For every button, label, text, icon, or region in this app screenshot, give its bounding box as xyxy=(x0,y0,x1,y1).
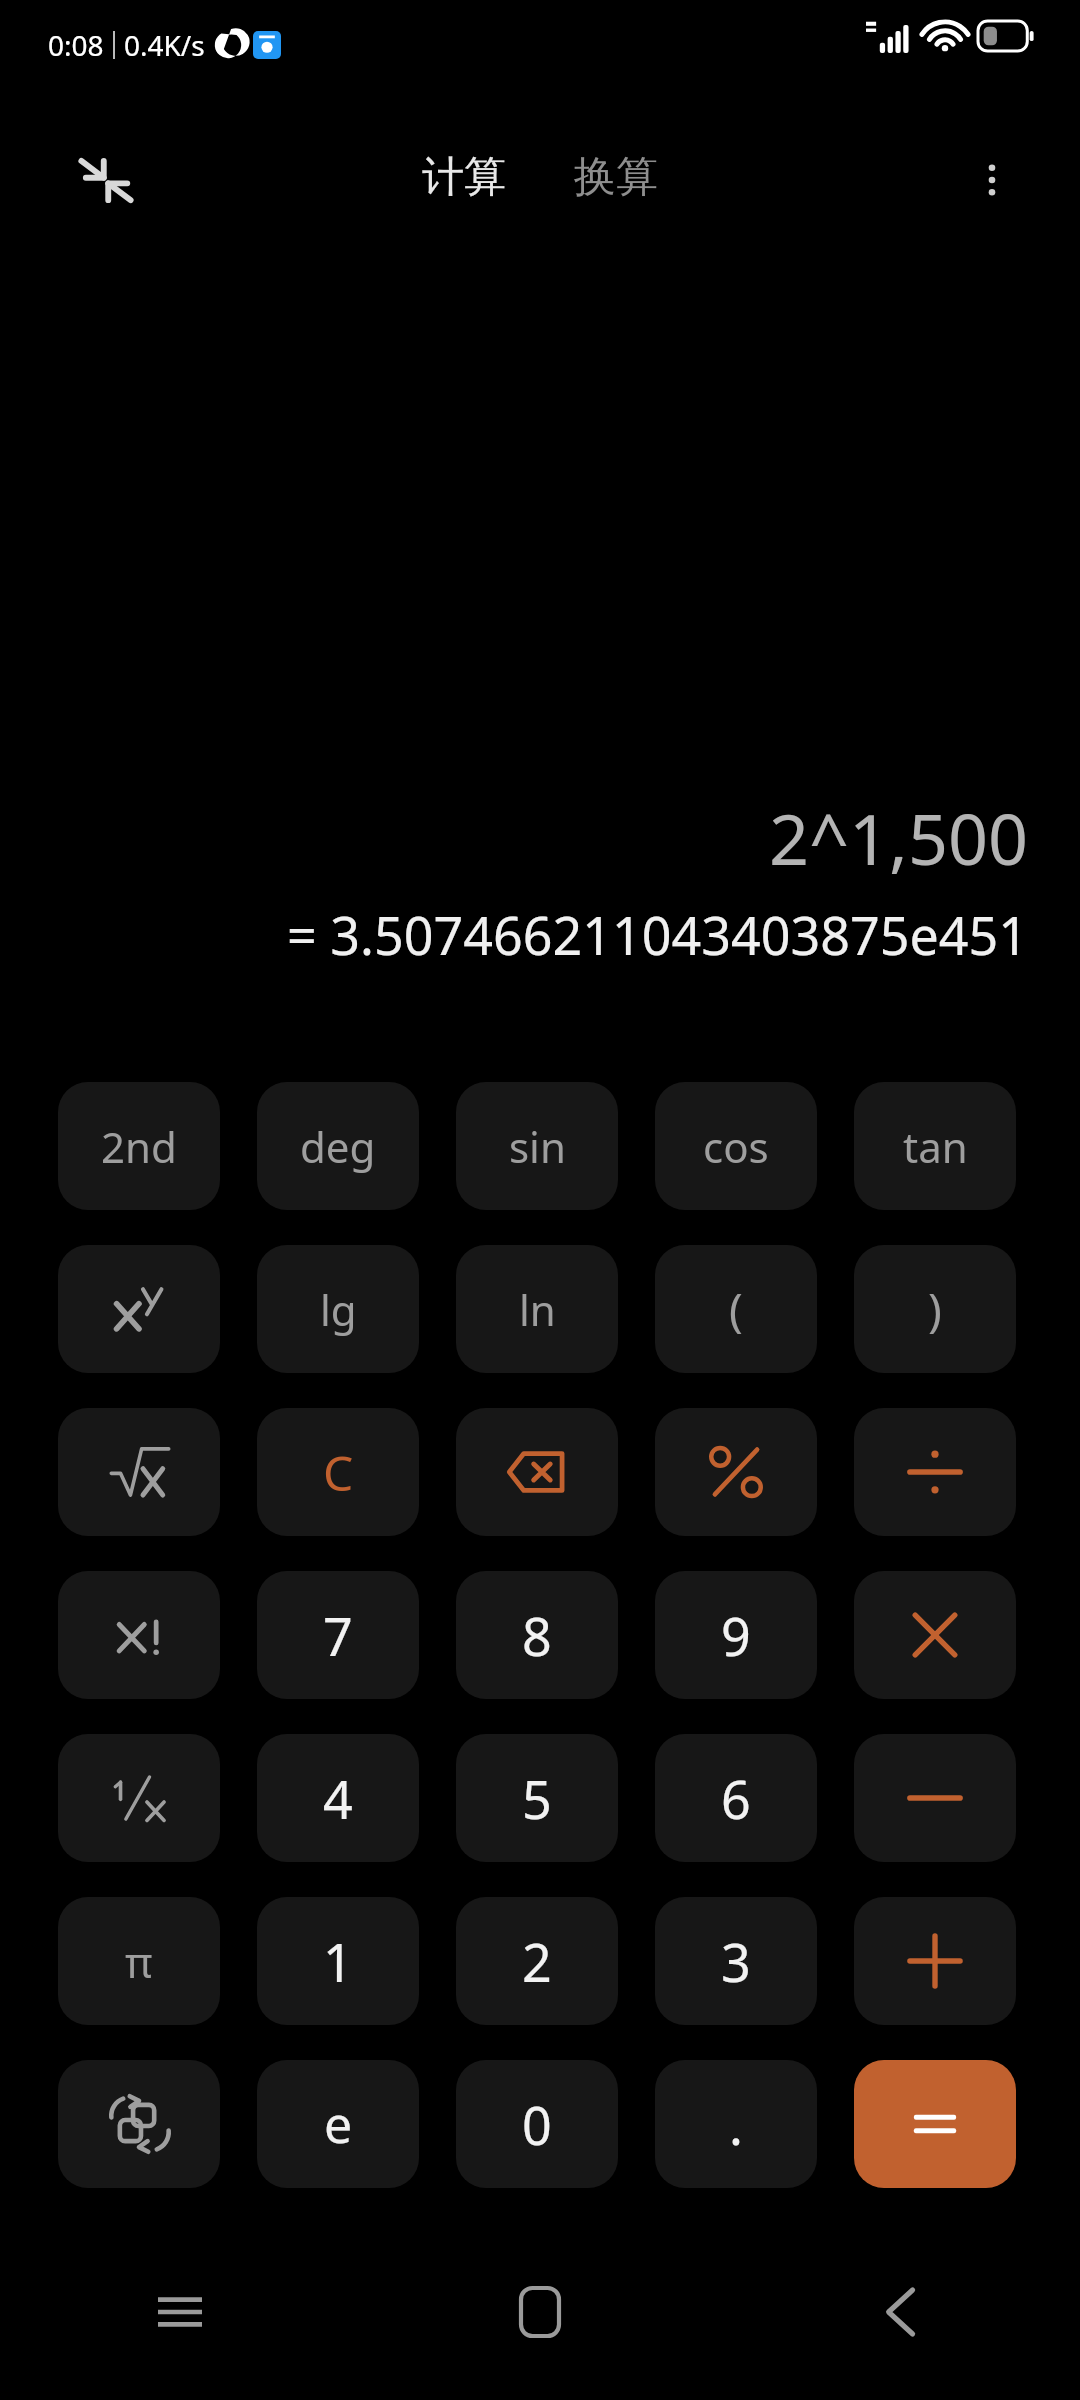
staticText: 5 xyxy=(522,1763,552,1834)
button[interactable]: 计算 xyxy=(410,143,518,212)
button[interactable]: ) xyxy=(854,1245,1016,1373)
button[interactable]: π xyxy=(58,1897,220,2025)
staticText: cos xyxy=(703,1118,769,1175)
staticText: 0.4K/s xyxy=(124,26,205,64)
button[interactable]: deg xyxy=(257,1082,419,1210)
button[interactable]: Divide xyxy=(854,1408,1016,1536)
button[interactable]: sin xyxy=(456,1082,618,1210)
button[interactable]: 6 xyxy=(655,1734,817,1862)
staticText: 计算 xyxy=(422,151,506,204)
staticText: sin xyxy=(509,1118,566,1175)
staticText: ) xyxy=(928,1278,942,1341)
staticText: C xyxy=(323,1440,354,1505)
staticText: 7 xyxy=(323,1600,353,1671)
button[interactable]: e xyxy=(257,2060,419,2188)
button[interactable]: 2 xyxy=(456,1897,618,2025)
staticText: 9 xyxy=(721,1600,751,1671)
button[interactable]: Square root xyxy=(58,1408,220,1536)
button[interactable]: Recents xyxy=(125,2257,235,2367)
button[interactable]: Backspace xyxy=(456,1408,618,1536)
button[interactable]: x to the power y xyxy=(58,1245,220,1373)
button[interactable]: tan xyxy=(854,1082,1016,1210)
button[interactable]: 换算 xyxy=(562,143,670,212)
staticText: 2nd xyxy=(101,1118,177,1175)
button[interactable]: Multiply xyxy=(854,1571,1016,1699)
staticText: 6 xyxy=(721,1763,751,1834)
button[interactable]: ( xyxy=(655,1245,817,1373)
button[interactable]: 5 xyxy=(456,1734,618,1862)
staticText: 0 xyxy=(522,2089,552,2160)
button[interactable]: Factorial xyxy=(58,1571,220,1699)
button[interactable]: 0 xyxy=(456,2060,618,2188)
staticText: 2 xyxy=(522,1926,552,1997)
button[interactable]: Plus xyxy=(854,1897,1016,2025)
button[interactable]: cos xyxy=(655,1082,817,1210)
button[interactable]: C xyxy=(257,1408,419,1536)
button[interactable]: 4 xyxy=(257,1734,419,1862)
button[interactable]: Reciprocal xyxy=(58,1734,220,1862)
button[interactable]: Home xyxy=(485,2257,595,2367)
staticText: 4 xyxy=(323,1763,353,1834)
button[interactable]: 2nd xyxy=(58,1082,220,1210)
button[interactable]: 7 xyxy=(257,1571,419,1699)
button[interactable]: . xyxy=(655,2060,817,2188)
staticText: 0:08 xyxy=(48,26,104,64)
staticText: = 3.507466211043403875e451 xyxy=(287,899,1028,970)
staticText: lg xyxy=(320,1281,357,1338)
button[interactable]: 9 xyxy=(655,1571,817,1699)
button[interactable]: More options xyxy=(948,136,1036,224)
staticText: . xyxy=(729,2089,743,2160)
staticText: deg xyxy=(300,1118,376,1175)
staticText: 3 xyxy=(721,1926,751,1997)
staticText: π xyxy=(125,1933,153,1990)
button[interactable]: Equals xyxy=(854,2060,1016,2188)
button[interactable]: ln xyxy=(456,1245,618,1373)
staticText: tan xyxy=(903,1118,968,1175)
button[interactable]: Percent xyxy=(655,1408,817,1536)
staticText: 1 xyxy=(323,1926,353,1997)
staticText: ln xyxy=(519,1281,556,1338)
button[interactable]: 3 xyxy=(655,1897,817,2025)
button[interactable]: 1 xyxy=(257,1897,419,2025)
staticText: ( xyxy=(729,1278,743,1341)
staticText: 2^1,500 xyxy=(769,790,1028,885)
staticText: 换算 xyxy=(574,151,658,204)
button[interactable]: Collapse xyxy=(62,136,150,224)
button[interactable]: Back xyxy=(845,2257,955,2367)
button[interactable]: Swap units xyxy=(58,2060,220,2188)
staticText: e xyxy=(324,2090,353,2158)
staticText: 8 xyxy=(522,1600,552,1671)
button[interactable]: lg xyxy=(257,1245,419,1373)
button[interactable]: Minus xyxy=(854,1734,1016,1862)
button[interactable]: 8 xyxy=(456,1571,618,1699)
